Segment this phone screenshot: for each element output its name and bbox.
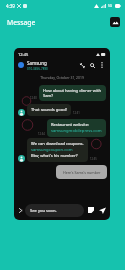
button[interactable]: That sounds good! <box>27 104 71 116</box>
staticText: 4:39 <box>6 3 15 9</box>
staticText: Thursday, October 31, 2019 <box>14 75 110 80</box>
button[interactable]: Call <box>78 61 86 69</box>
staticText: We can download coupons. <box>31 141 84 147</box>
staticText: How about having dinner with Sam? <box>43 88 102 98</box>
staticText: 12:35 <box>90 157 97 161</box>
button[interactable]: More options <box>98 61 106 69</box>
button[interactable]: Gallery <box>110 17 120 27</box>
staticText: samsungmobilepress.com <box>51 128 102 134</box>
staticText: Restaurant website: <box>51 122 90 128</box>
staticText: See you soon. <box>30 208 57 214</box>
button[interactable]: Attach <box>87 206 95 214</box>
staticText: samsungcoupon.com <box>31 147 73 153</box>
staticText: 12:34 <box>38 132 45 136</box>
staticText: That sounds good! <box>31 107 67 113</box>
staticText: Samsung <box>27 60 47 66</box>
button[interactable]: See you soon. <box>25 204 84 217</box>
staticText: 010-3456-7890 <box>27 67 48 71</box>
staticText: Here's Sams's number <box>63 170 101 175</box>
staticText: 12:30 <box>30 96 37 100</box>
button[interactable]: Send <box>98 206 107 215</box>
staticText: Btw, what's his number? <box>31 153 78 159</box>
button[interactable]: How about having dinner with Sam? <box>39 85 106 101</box>
button[interactable]: We can download coupons. <box>27 138 88 162</box>
staticText: 12:45 <box>18 52 29 57</box>
staticText: Message <box>7 18 36 27</box>
button[interactable]: Contact photo <box>18 62 24 68</box>
staticText: 5G <box>108 4 113 8</box>
button[interactable]: Here's Sams's number <box>56 165 107 179</box>
staticText: 12:31 <box>73 111 80 115</box>
button[interactable]: Restaurant website: <box>47 119 106 137</box>
button[interactable]: Search <box>88 61 96 69</box>
button[interactable]: Expand <box>17 207 24 214</box>
